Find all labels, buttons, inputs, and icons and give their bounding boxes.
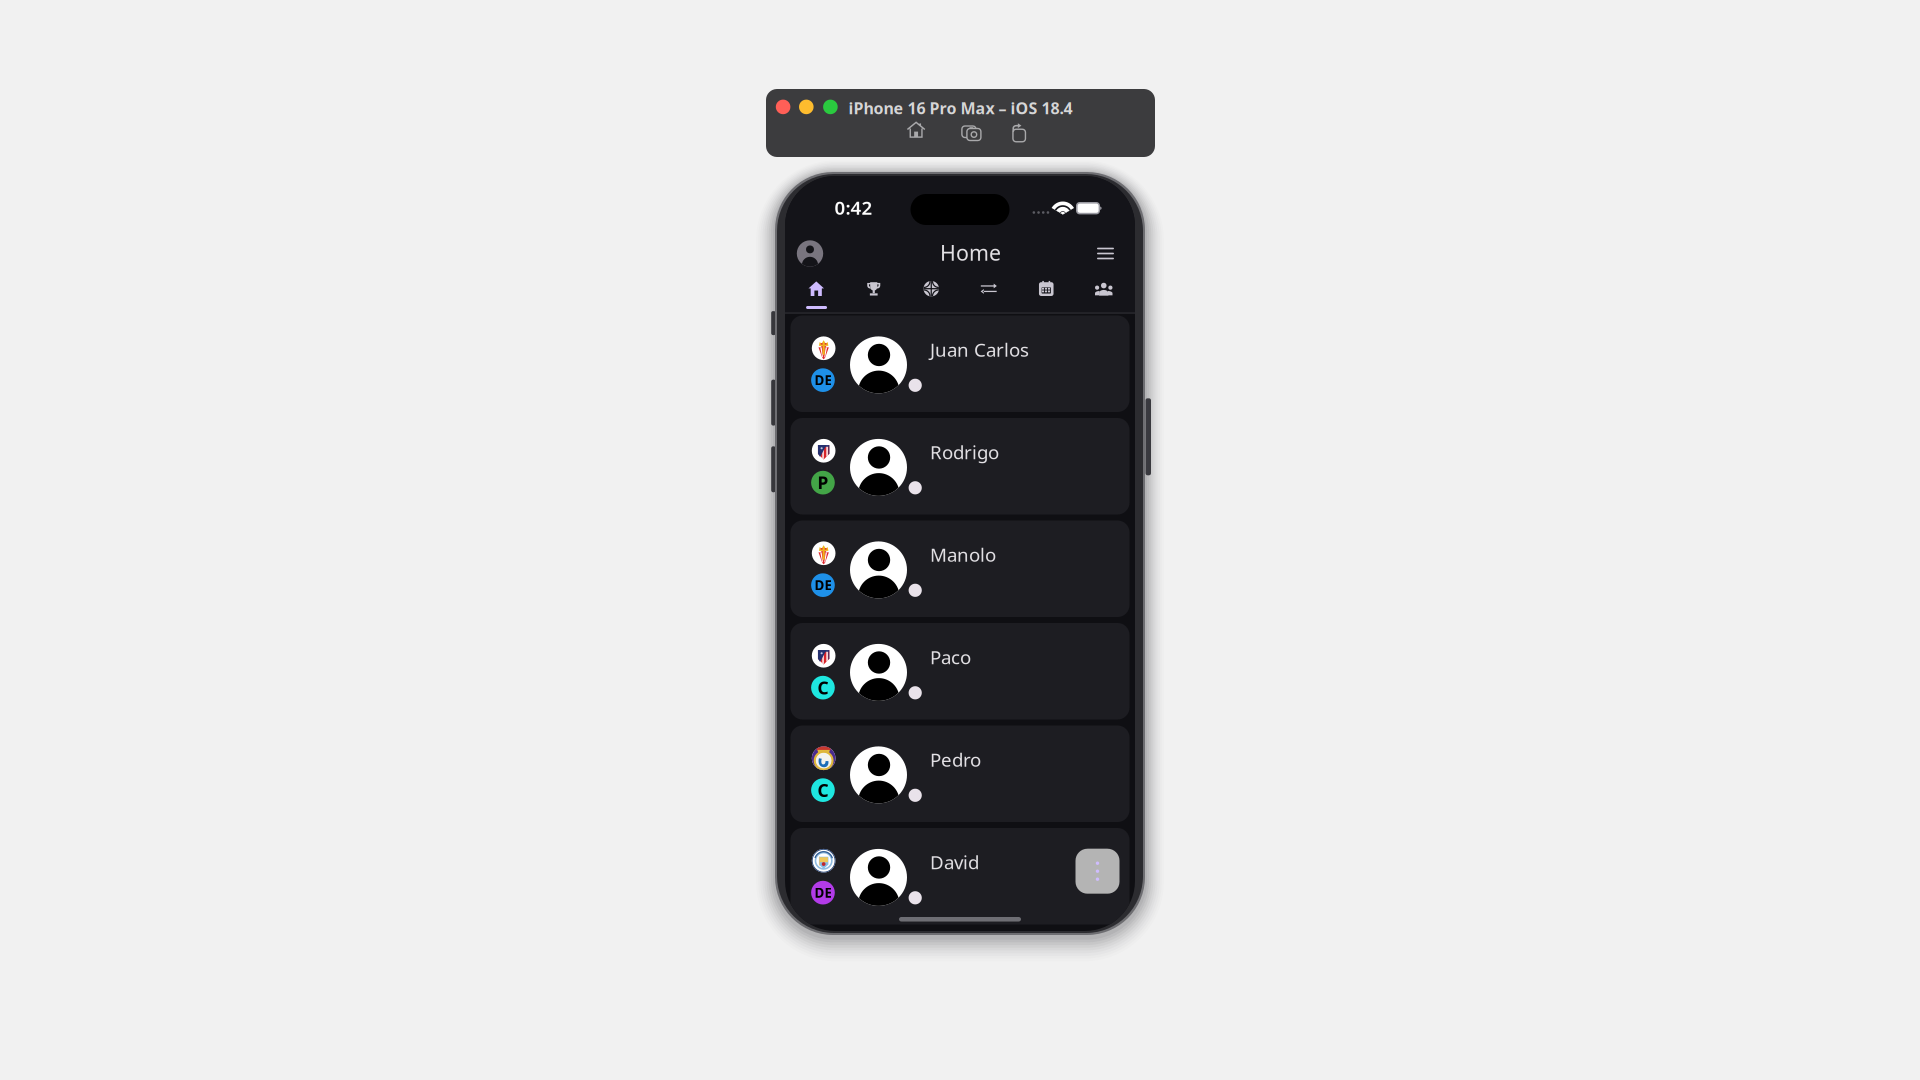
button[interactable]: Matches: [903, 264, 959, 312]
staticText: Home: [940, 238, 1001, 267]
button[interactable]: Close: [776, 100, 790, 114]
button[interactable]: Screenshot: [954, 119, 984, 139]
button[interactable]: More options: [1075, 849, 1119, 894]
button[interactable]: C: [790, 623, 1129, 719]
button[interactable]: C: [790, 725, 1129, 822]
staticText: Juan Carlos: [930, 337, 1029, 362]
button[interactable]: Home: [901, 119, 931, 139]
button[interactable]: Rotate: [1002, 119, 1032, 139]
staticText: iPhone 16 Pro Max – iOS 18.4: [848, 97, 1072, 119]
staticText: Rodrigo: [930, 439, 999, 464]
button[interactable]: DE: [790, 828, 1129, 924]
button[interactable]: Home: [788, 264, 844, 312]
staticText: C: [817, 676, 828, 699]
button[interactable]: DE: [790, 520, 1129, 617]
staticText: David: [930, 849, 979, 874]
button[interactable]: Competitions: [846, 264, 902, 312]
staticText: P: [817, 471, 828, 494]
staticText: C: [817, 779, 828, 802]
button[interactable]: Menu: [1083, 231, 1127, 275]
button[interactable]: Calendar: [1018, 264, 1074, 312]
button[interactable]: Minimise: [799, 100, 814, 114]
staticText: Paco: [930, 644, 971, 669]
staticText: DE: [814, 371, 831, 389]
button[interactable]: Transfers: [961, 264, 1017, 312]
button[interactable]: DE: [790, 315, 1129, 412]
button[interactable]: Teams: [1076, 264, 1132, 312]
staticText: DE: [814, 884, 831, 901]
button[interactable]: P: [790, 418, 1129, 514]
staticText: 0:42: [834, 195, 872, 220]
staticText: Manolo: [930, 542, 996, 567]
button[interactable]: Profile: [788, 231, 832, 275]
button[interactable]: Zoom: [823, 100, 838, 114]
staticText: Pedro: [930, 747, 981, 772]
staticText: DE: [814, 576, 831, 594]
